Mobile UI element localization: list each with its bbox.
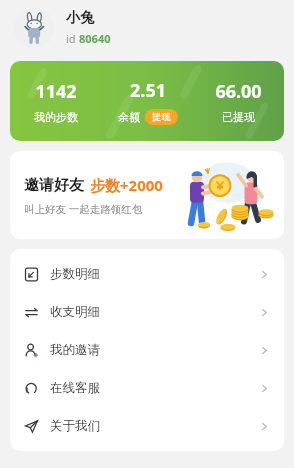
button[interactable]: 小兔 <box>0 0 294 55</box>
staticText: 在线客服 <box>50 380 100 396</box>
button[interactable]: 邀请好友 <box>10 151 284 239</box>
staticText: 步数明细 <box>50 266 100 282</box>
staticText: id <box>66 31 79 46</box>
staticText: 步数+2000 <box>90 175 163 195</box>
staticText: 叫上好友 一起走路领红包 <box>24 202 143 216</box>
staticText: 关于我们 <box>50 418 100 434</box>
staticText: 已提现 <box>222 110 255 124</box>
staticText: 余额 <box>118 110 140 124</box>
button[interactable]: 关于我们 <box>10 407 284 445</box>
staticText: 小兔 <box>66 9 94 27</box>
staticText: 提现 <box>152 111 171 123</box>
staticText: 1142 <box>35 79 77 104</box>
button[interactable]: 提现 <box>145 109 178 125</box>
staticText: 邀请好友 <box>24 176 84 195</box>
staticText: 66.00 <box>215 79 262 104</box>
button[interactable]: 在线客服 <box>10 369 284 407</box>
button[interactable]: 我的邀请 <box>10 331 284 369</box>
button[interactable]: 1142 <box>10 61 284 141</box>
staticText: 80640 <box>79 31 111 46</box>
button[interactable]: 收支明细 <box>10 293 284 331</box>
button[interactable]: 步数明细 <box>10 255 284 293</box>
staticText: 我的步数 <box>34 110 78 124</box>
staticText: 收支明细 <box>50 304 100 320</box>
staticText: 2.51 <box>130 78 166 103</box>
staticText: 我的邀请 <box>50 342 100 358</box>
